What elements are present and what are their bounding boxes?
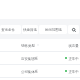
staticText: 查询条件 xyxy=(1,28,15,32)
staticText: 时间范围选 xyxy=(45,28,62,32)
button[interactable]: 时间范围选 xyxy=(39,25,67,34)
button[interactable]: 销售类型 xyxy=(0,39,80,51)
staticText: 快捷筛选 xyxy=(23,28,37,32)
button[interactable]: 公司集体系 xyxy=(0,65,80,77)
staticText: 公司集体系 xyxy=(21,70,38,74)
button[interactable]: 百安集团系 xyxy=(0,52,80,64)
staticText: 正常中 xyxy=(68,57,79,61)
button[interactable]: Search xyxy=(68,25,79,34)
staticText: 正常中 xyxy=(68,70,79,74)
staticText: 销售类型 xyxy=(21,44,35,48)
staticText: 状态量 xyxy=(68,44,79,48)
button[interactable]: 快捷筛选 xyxy=(22,25,38,34)
button[interactable]: 查询条件 xyxy=(0,25,21,34)
staticText: 百安集团系 xyxy=(21,57,38,61)
